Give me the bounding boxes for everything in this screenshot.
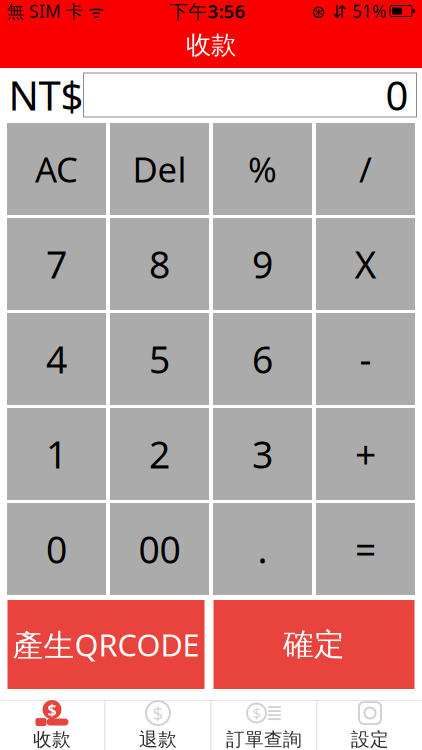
staticText: 6: [252, 334, 273, 384]
button[interactable]: 確定: [213, 600, 414, 689]
staticText: 收款: [186, 29, 236, 60]
staticText: X: [354, 239, 376, 289]
button[interactable]: 8: [110, 218, 209, 310]
button[interactable]: 9: [213, 218, 312, 310]
staticText: 1: [46, 429, 67, 479]
staticText: 7: [46, 239, 67, 289]
staticText: .: [257, 524, 267, 574]
staticText: Del: [132, 146, 186, 192]
button[interactable]: 7: [7, 218, 106, 310]
button[interactable]: Del: [110, 123, 209, 215]
button[interactable]: $: [0, 700, 104, 750]
staticText: 產生QRCODE: [12, 624, 199, 665]
staticText: 設定: [351, 728, 389, 750]
staticText: 訂單查詢: [226, 728, 302, 750]
staticText: 3: [252, 429, 273, 479]
button[interactable]: $: [105, 700, 210, 750]
staticText: 0: [46, 524, 67, 574]
staticText: =: [355, 524, 376, 574]
button[interactable]: 1: [7, 408, 106, 500]
staticText: 確定: [283, 626, 345, 663]
staticText: -: [359, 334, 371, 384]
staticText: $: [47, 699, 56, 720]
staticText: ⊛ ⇵ 51%: [311, 0, 386, 22]
button[interactable]: .: [213, 503, 312, 595]
staticText: $: [252, 703, 260, 723]
staticText: 0: [385, 68, 408, 121]
button[interactable]: 0: [7, 503, 106, 595]
button[interactable]: 產生QRCODE: [7, 600, 204, 689]
button[interactable]: 設定: [317, 700, 422, 750]
staticText: 00: [138, 524, 180, 574]
button[interactable]: 2: [110, 408, 209, 500]
button[interactable]: 00: [110, 503, 209, 595]
button[interactable]: -: [316, 313, 415, 405]
button[interactable]: /: [316, 123, 415, 215]
staticText: 5: [149, 334, 170, 384]
staticText: 9: [252, 239, 273, 289]
staticText: /: [359, 146, 372, 192]
button[interactable]: $: [211, 700, 316, 750]
button[interactable]: +: [316, 408, 415, 500]
staticText: 下午3:56: [169, 0, 245, 23]
staticText: 收款: [33, 728, 71, 750]
staticText: $: [152, 701, 163, 725]
staticText: ᯤ: [83, 0, 104, 22]
button[interactable]: AC: [7, 123, 106, 215]
button[interactable]: 6: [213, 313, 312, 405]
staticText: 4: [46, 334, 67, 384]
button[interactable]: 5: [110, 313, 209, 405]
staticText: %: [248, 146, 277, 192]
staticText: 無 SIM 卡: [7, 0, 83, 22]
staticText: 8: [149, 239, 170, 289]
button[interactable]: =: [316, 503, 415, 595]
button[interactable]: 4: [7, 313, 106, 405]
staticText: NT$: [8, 68, 83, 121]
staticText: +: [355, 429, 376, 479]
staticText: AC: [35, 146, 78, 192]
staticText: 退款: [139, 728, 177, 750]
button[interactable]: %: [213, 123, 312, 215]
staticText: 2: [149, 429, 170, 479]
button[interactable]: X: [316, 218, 415, 310]
button[interactable]: 3: [213, 408, 312, 500]
